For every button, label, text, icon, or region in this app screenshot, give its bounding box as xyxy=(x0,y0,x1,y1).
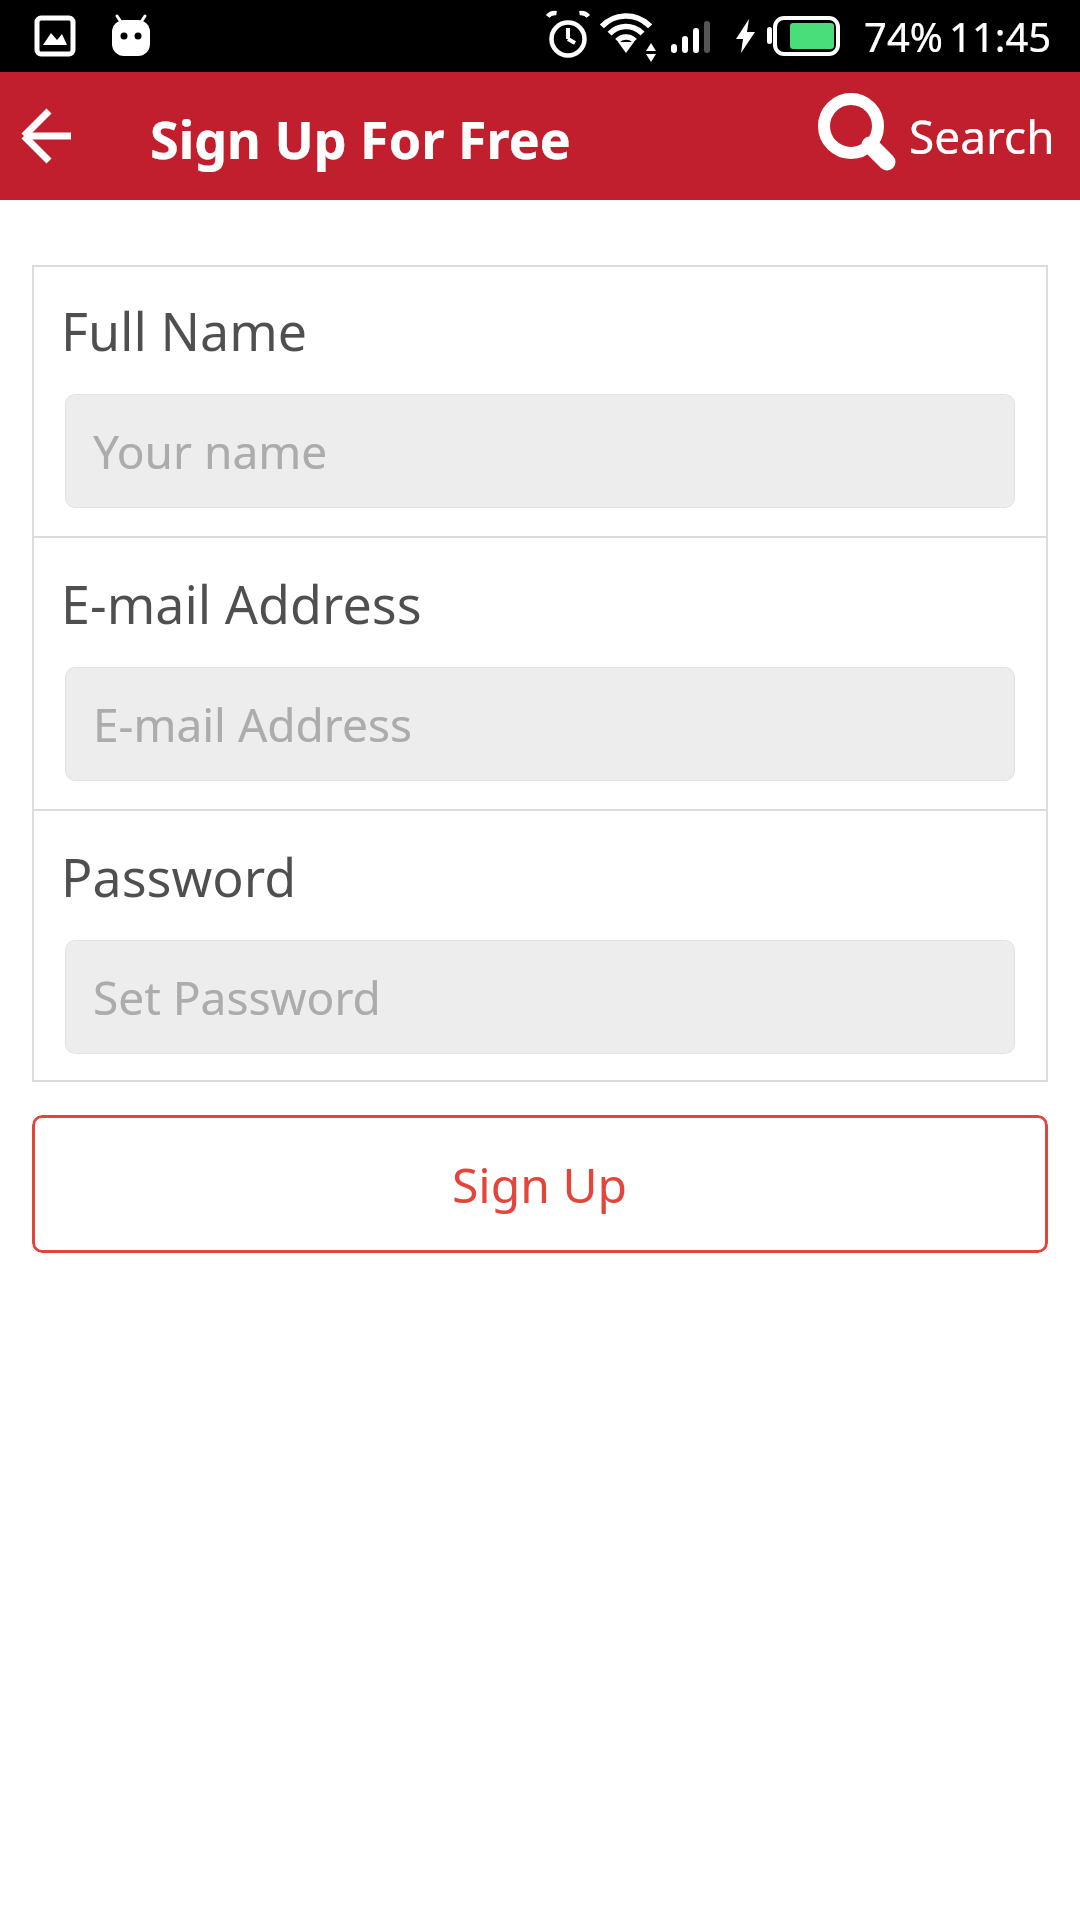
staticText: Search xyxy=(909,105,1055,168)
button[interactable]: Set Password xyxy=(65,940,1015,1054)
staticText: 74% xyxy=(864,9,943,63)
button[interactable]: Search xyxy=(819,98,1055,174)
staticText: Your name xyxy=(93,420,328,483)
staticText: Sign Up xyxy=(452,1152,628,1217)
staticText: E-mail Address xyxy=(61,568,422,639)
staticText: Sign Up For Free xyxy=(150,103,571,174)
staticText: Set Password xyxy=(93,966,381,1029)
staticText: Full Name xyxy=(61,295,308,366)
button[interactable] xyxy=(0,72,96,200)
staticText: Password xyxy=(61,841,297,912)
button[interactable]: Your name xyxy=(65,394,1015,508)
button[interactable]: Sign Up xyxy=(32,1115,1048,1253)
staticText: 11:45 xyxy=(949,9,1052,63)
button[interactable]: E-mail Address xyxy=(65,667,1015,781)
staticText: E-mail Address xyxy=(93,693,412,756)
